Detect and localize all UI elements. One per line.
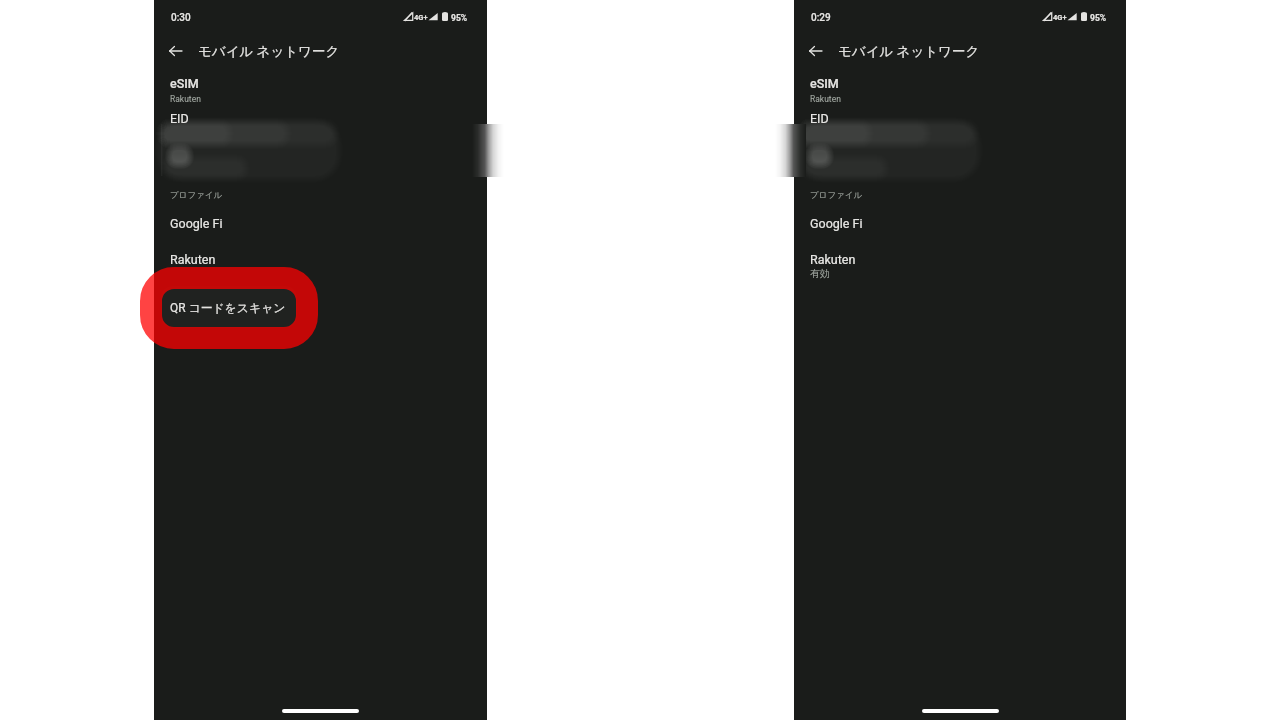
staticText: 4G+ — [414, 13, 428, 22]
button[interactable]: QR コードをスキャン — [161, 286, 297, 328]
button[interactable]: Back — [160, 36, 190, 66]
staticText: モバイル ネットワーク — [198, 43, 340, 60]
staticText: プロファイル — [170, 190, 223, 201]
staticText: モバイル ネットワーク — [838, 43, 980, 60]
button[interactable]: EID — [794, 110, 1126, 127]
staticText: 0:30 — [171, 12, 191, 24]
staticText: Rakuten — [810, 252, 856, 267]
staticText: Rakuten — [170, 94, 201, 104]
staticText: 4G+ — [1053, 13, 1067, 22]
button[interactable]: Rakuten — [794, 250, 1126, 284]
button[interactable]: eSIM — [154, 74, 487, 105]
staticText: 有効 — [810, 267, 830, 280]
button[interactable]: Google Fi — [794, 214, 1126, 235]
staticText: 0:29 — [811, 12, 831, 24]
staticText: 95% — [1090, 13, 1107, 23]
staticText: 95% — [451, 13, 468, 23]
staticText: Rakuten — [170, 252, 216, 267]
button[interactable]: EID — [154, 110, 487, 127]
staticText: eSIM — [810, 76, 839, 91]
staticText: Rakuten — [810, 94, 841, 104]
button[interactable]: eSIM — [794, 74, 1126, 105]
button[interactable]: Google Fi — [154, 214, 487, 235]
staticText: QR コードをスキャン — [170, 301, 286, 316]
staticText: eSIM — [170, 76, 199, 91]
button[interactable]: Rakuten — [154, 250, 487, 271]
button[interactable]: Back — [800, 36, 830, 66]
staticText: プロファイル — [810, 190, 863, 201]
